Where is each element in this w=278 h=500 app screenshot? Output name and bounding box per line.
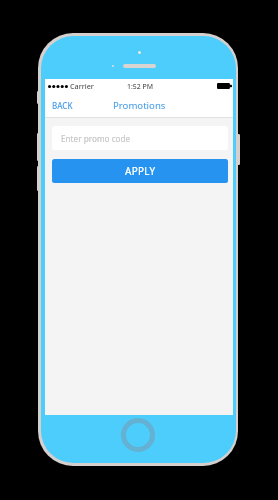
staticText: Promotions	[113, 99, 166, 112]
staticText: BACK	[52, 100, 73, 111]
button[interactable]: Home	[121, 418, 155, 452]
button[interactable]: APPLY	[52, 159, 228, 183]
button[interactable]: Enter promo code	[52, 126, 228, 150]
staticText: Carrier	[70, 81, 94, 91]
staticText: APPLY	[125, 164, 156, 177]
staticText: Enter promo code	[61, 133, 131, 144]
staticText: 1:52 PM	[127, 82, 154, 91]
button[interactable]: BACK	[45, 95, 80, 116]
